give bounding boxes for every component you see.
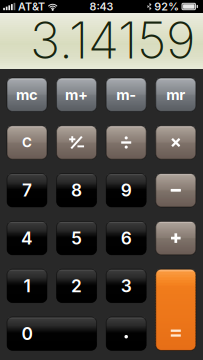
staticText: 6 <box>121 228 132 249</box>
button[interactable]: mr <box>156 78 196 111</box>
button[interactable]: Minus <box>156 174 196 207</box>
staticText: 8:43 <box>89 0 113 13</box>
staticText: 8 <box>71 180 82 201</box>
button[interactable]: 1 <box>7 269 47 303</box>
button[interactable]: Multiply <box>156 126 196 159</box>
button[interactable]: 2 <box>57 269 97 303</box>
staticText: m- <box>116 86 136 103</box>
staticText: 92% <box>154 0 179 13</box>
button[interactable]: C <box>7 126 47 159</box>
staticText: 0 <box>21 323 32 344</box>
staticText: 1 <box>23 275 30 296</box>
button[interactable]: 5 <box>57 221 97 255</box>
staticText: AT&T <box>18 0 45 13</box>
button[interactable]: Decimal point <box>106 317 146 350</box>
button[interactable]: 4 <box>7 221 47 255</box>
button[interactable]: Plus <box>156 221 196 255</box>
staticText: 2 <box>71 275 82 296</box>
button[interactable]: mc <box>7 78 47 111</box>
button[interactable]: Divide <box>106 126 146 159</box>
button[interactable]: 3 <box>106 269 146 303</box>
button[interactable]: 7 <box>7 174 47 207</box>
button[interactable]: Equals <box>156 269 196 350</box>
button[interactable]: 9 <box>106 174 146 207</box>
staticText: 7 <box>22 180 32 201</box>
button[interactable]: Plus minus <box>57 126 97 159</box>
staticText: mc <box>16 86 38 103</box>
staticText: 4 <box>21 228 33 249</box>
staticText: C <box>22 134 32 150</box>
staticText: 3.14159 <box>30 9 196 71</box>
button[interactable]: m- <box>106 78 146 111</box>
staticText: mr <box>166 86 185 103</box>
staticText: 9 <box>121 180 132 201</box>
button[interactable]: 8 <box>57 174 97 207</box>
button[interactable]: m+ <box>57 78 97 111</box>
button[interactable]: 0 <box>7 317 97 350</box>
staticText: 5 <box>71 228 82 249</box>
button[interactable]: 6 <box>106 221 146 255</box>
staticText: 3 <box>121 275 132 296</box>
staticText: m+ <box>65 86 88 103</box>
